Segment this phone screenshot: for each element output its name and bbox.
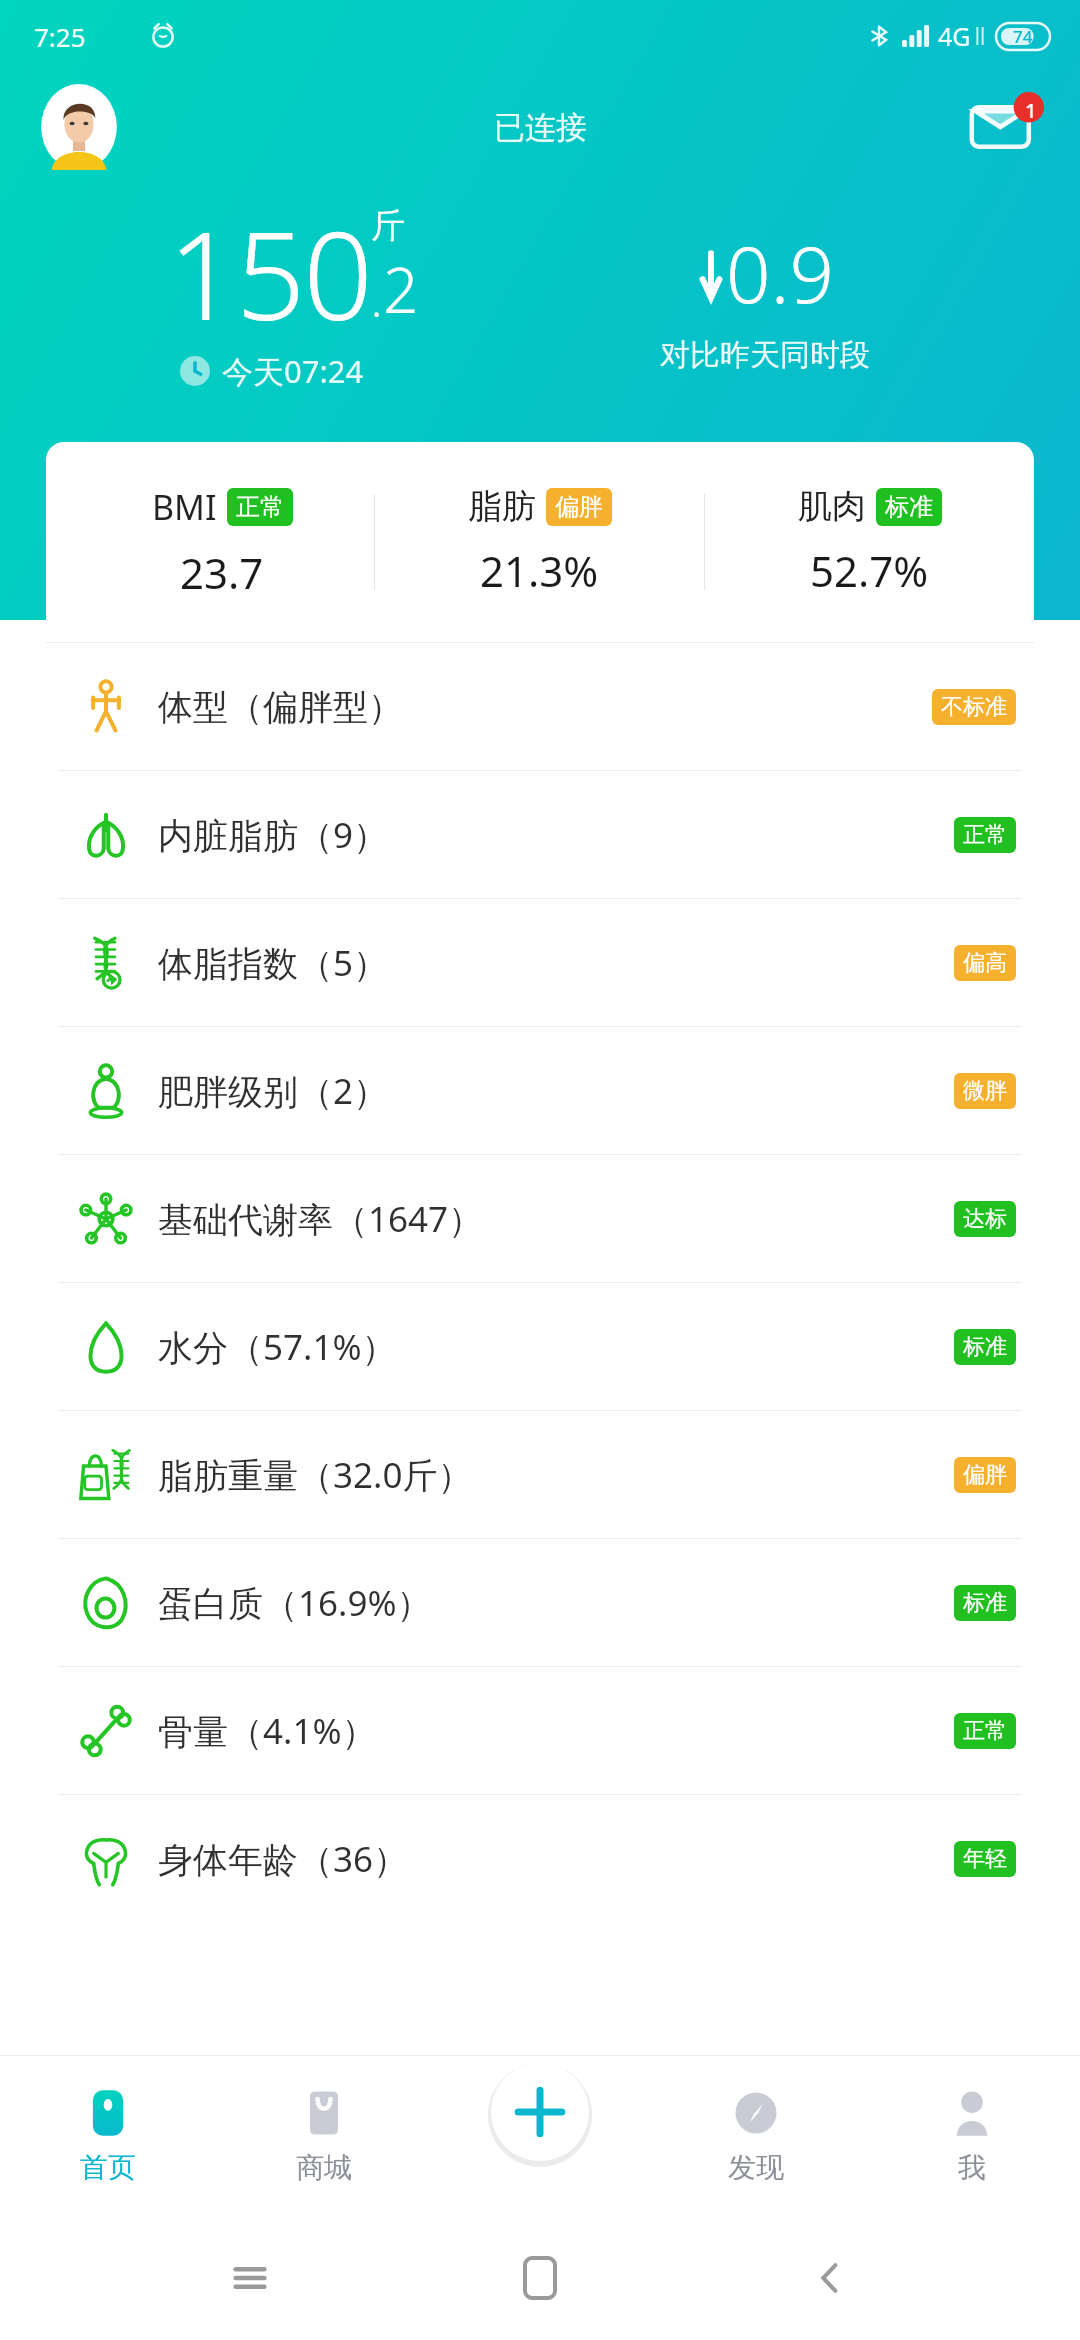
staticText: BMI <box>152 484 217 530</box>
button[interactable]: Home <box>500 2238 580 2318</box>
staticText: 偏高 <box>963 949 1007 977</box>
staticText: 首页 <box>80 2150 136 2185</box>
button[interactable]: 蛋白质（16.9%） <box>46 1539 1034 1666</box>
staticText: 不标准 <box>941 693 1007 721</box>
button[interactable]: 水分（57.1%） <box>46 1283 1034 1410</box>
button[interactable]: 发现 <box>648 2055 864 2215</box>
staticText: 150 <box>168 190 371 356</box>
button[interactable]: 肌肉 <box>705 442 1034 642</box>
staticText: 正常 <box>963 821 1007 849</box>
staticText: 正常 <box>963 1717 1007 1745</box>
staticText: 年轻 <box>963 1845 1007 1873</box>
staticText: 脂肪 <box>468 485 536 528</box>
staticText: 正常 <box>236 492 284 522</box>
staticText: 对比昨天同时段 <box>660 336 870 374</box>
staticText: 52.7% <box>810 542 929 599</box>
button[interactable]: 商城 <box>216 2055 432 2215</box>
staticText: 微胖 <box>963 1077 1007 1105</box>
staticText: 达标 <box>963 1205 1007 1233</box>
staticText: 标准 <box>963 1589 1007 1617</box>
staticText: 体脂指数（5） <box>158 939 954 987</box>
staticText: 4G <box>938 19 971 53</box>
staticText: 偏胖 <box>555 492 603 522</box>
button[interactable]: Profile <box>36 84 122 170</box>
staticText: 我 <box>958 2150 986 2185</box>
staticText: 内脏脂肪（9） <box>158 811 954 859</box>
button[interactable]: 我 <box>864 2055 1080 2215</box>
staticText: 发现 <box>728 2150 784 2185</box>
staticText: 1 <box>1025 97 1037 124</box>
staticText: 已连接 <box>494 108 587 147</box>
staticText: 23.7 <box>180 544 264 601</box>
button[interactable]: 内脏脂肪（9） <box>46 771 1034 898</box>
button[interactable]: 骨量（4.1%） <box>46 1667 1034 1794</box>
staticText: 74 <box>1013 25 1033 48</box>
staticText: 肥胖级别（2） <box>158 1067 954 1115</box>
staticText: 标准 <box>885 492 933 522</box>
staticText: 身体年龄（36） <box>158 1835 954 1883</box>
staticText: 水分（57.1%） <box>158 1323 954 1371</box>
button[interactable]: Back <box>790 2238 870 2318</box>
staticText: 21.3% <box>480 542 599 599</box>
button[interactable]: 肥胖级别（2） <box>46 1027 1034 1154</box>
staticText: 今天07:24 <box>222 350 364 392</box>
button[interactable]: 体型（偏胖型） <box>46 643 1034 770</box>
button[interactable]: BMI <box>46 442 374 642</box>
button[interactable]: 体脂指数（5） <box>46 899 1034 1026</box>
staticText: 偏胖 <box>963 1461 1007 1489</box>
staticText: 斤 <box>371 204 405 247</box>
staticText: 基础代谢率（1647） <box>158 1195 954 1243</box>
staticText: 肌肉 <box>798 485 866 528</box>
button[interactable]: 脂肪重量（32.0斤） <box>46 1411 1034 1538</box>
staticText: 2 <box>383 247 419 331</box>
button[interactable]: 身体年龄（36） <box>46 1795 1034 1922</box>
button[interactable]: Add measurement <box>488 2060 592 2164</box>
staticText: 蛋白质（16.9%） <box>158 1579 954 1627</box>
button[interactable]: Recents <box>210 2238 290 2318</box>
staticText: 脂肪重量（32.0斤） <box>158 1451 954 1499</box>
staticText: 7:25 <box>34 19 86 54</box>
button[interactable]: Messages <box>968 89 1044 165</box>
staticText: 0.9 <box>726 220 835 326</box>
staticText: 体型（偏胖型） <box>158 685 932 729</box>
staticText: 标准 <box>963 1333 1007 1361</box>
staticText: . <box>371 268 383 331</box>
button[interactable]: 基础代谢率（1647） <box>46 1155 1034 1282</box>
staticText: 商城 <box>296 2150 352 2185</box>
staticText: 骨量（4.1%） <box>158 1707 954 1755</box>
button[interactable]: 首页 <box>0 2055 216 2215</box>
button[interactable]: 脂肪 <box>375 442 704 642</box>
